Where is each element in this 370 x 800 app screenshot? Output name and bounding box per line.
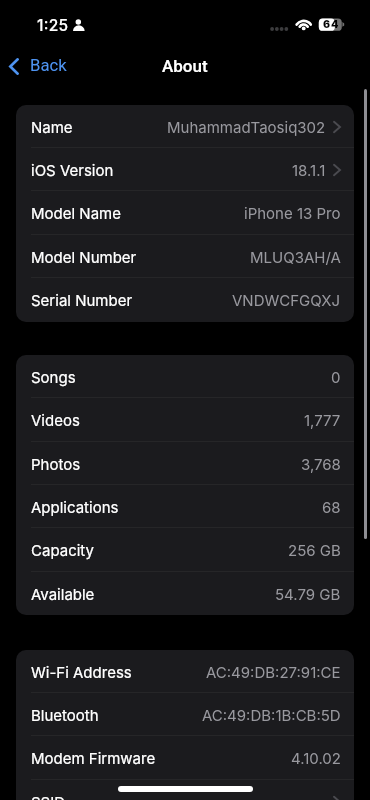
staticText: 64 — [323, 18, 340, 31]
button[interactable]: Capacity — [16, 528, 354, 572]
button[interactable]: Modem Firmware — [16, 736, 354, 780]
staticText: Videos — [31, 411, 80, 429]
button[interactable]: Name — [16, 105, 354, 148]
staticText: 4.10.02 — [291, 749, 341, 767]
button[interactable]: iOS Version — [16, 148, 354, 191]
staticText: Wi-Fi Address — [31, 663, 132, 681]
button[interactable]: Back — [0, 44, 77, 88]
button[interactable]: Videos — [16, 398, 354, 442]
staticText: Model Name — [31, 204, 121, 222]
staticText: Available — [31, 585, 95, 603]
staticText: AC:49:DB:1B:CB:5D — [202, 706, 341, 724]
button[interactable]: Photos — [16, 442, 354, 485]
staticText: Applications — [31, 498, 119, 516]
staticText: iOS Version — [31, 161, 114, 179]
button[interactable]: Bluetooth — [16, 693, 354, 736]
button[interactable]: Songs — [16, 355, 354, 398]
staticText: 1:25 — [37, 16, 69, 35]
staticText: About — [162, 56, 208, 76]
button[interactable]: Model Number — [16, 235, 354, 278]
staticText: AC:49:DB:27:91:CE — [206, 663, 341, 681]
staticText: iPhone 13 Pro — [244, 204, 341, 222]
button[interactable]: Wi-Fi Address — [16, 650, 354, 693]
staticText: Bluetooth — [31, 706, 99, 724]
staticText: Modem Firmware — [31, 749, 156, 767]
staticText: 18.1.1 — [292, 161, 326, 179]
staticText: Capacity — [31, 541, 94, 559]
staticText: 256 GB — [288, 541, 341, 559]
button[interactable]: SSID — [16, 780, 354, 800]
staticText: 54.79 GB — [275, 585, 341, 603]
staticText: MLUQ3AH/A — [250, 248, 341, 266]
staticText: MuhammadTaosiq302 — [167, 118, 326, 136]
staticText: Model Number — [31, 248, 137, 266]
staticText: Name — [31, 118, 73, 136]
staticText: Songs — [31, 368, 76, 386]
staticText: 68 — [322, 498, 341, 516]
staticText: 1,777 — [304, 411, 341, 429]
staticText: Serial Number — [31, 291, 133, 309]
button[interactable]: Applications — [16, 485, 354, 528]
staticText: 3,768 — [301, 455, 341, 473]
button[interactable]: Model Name — [16, 191, 354, 235]
button[interactable]: Serial Number — [16, 278, 354, 322]
staticText: 0 — [331, 368, 341, 386]
staticText: Back — [30, 56, 67, 76]
staticText: Photos — [31, 455, 81, 473]
staticText: SSID — [31, 793, 66, 800]
button[interactable]: Available — [16, 572, 354, 615]
staticText: VNDWCFGQXJ — [232, 291, 341, 309]
